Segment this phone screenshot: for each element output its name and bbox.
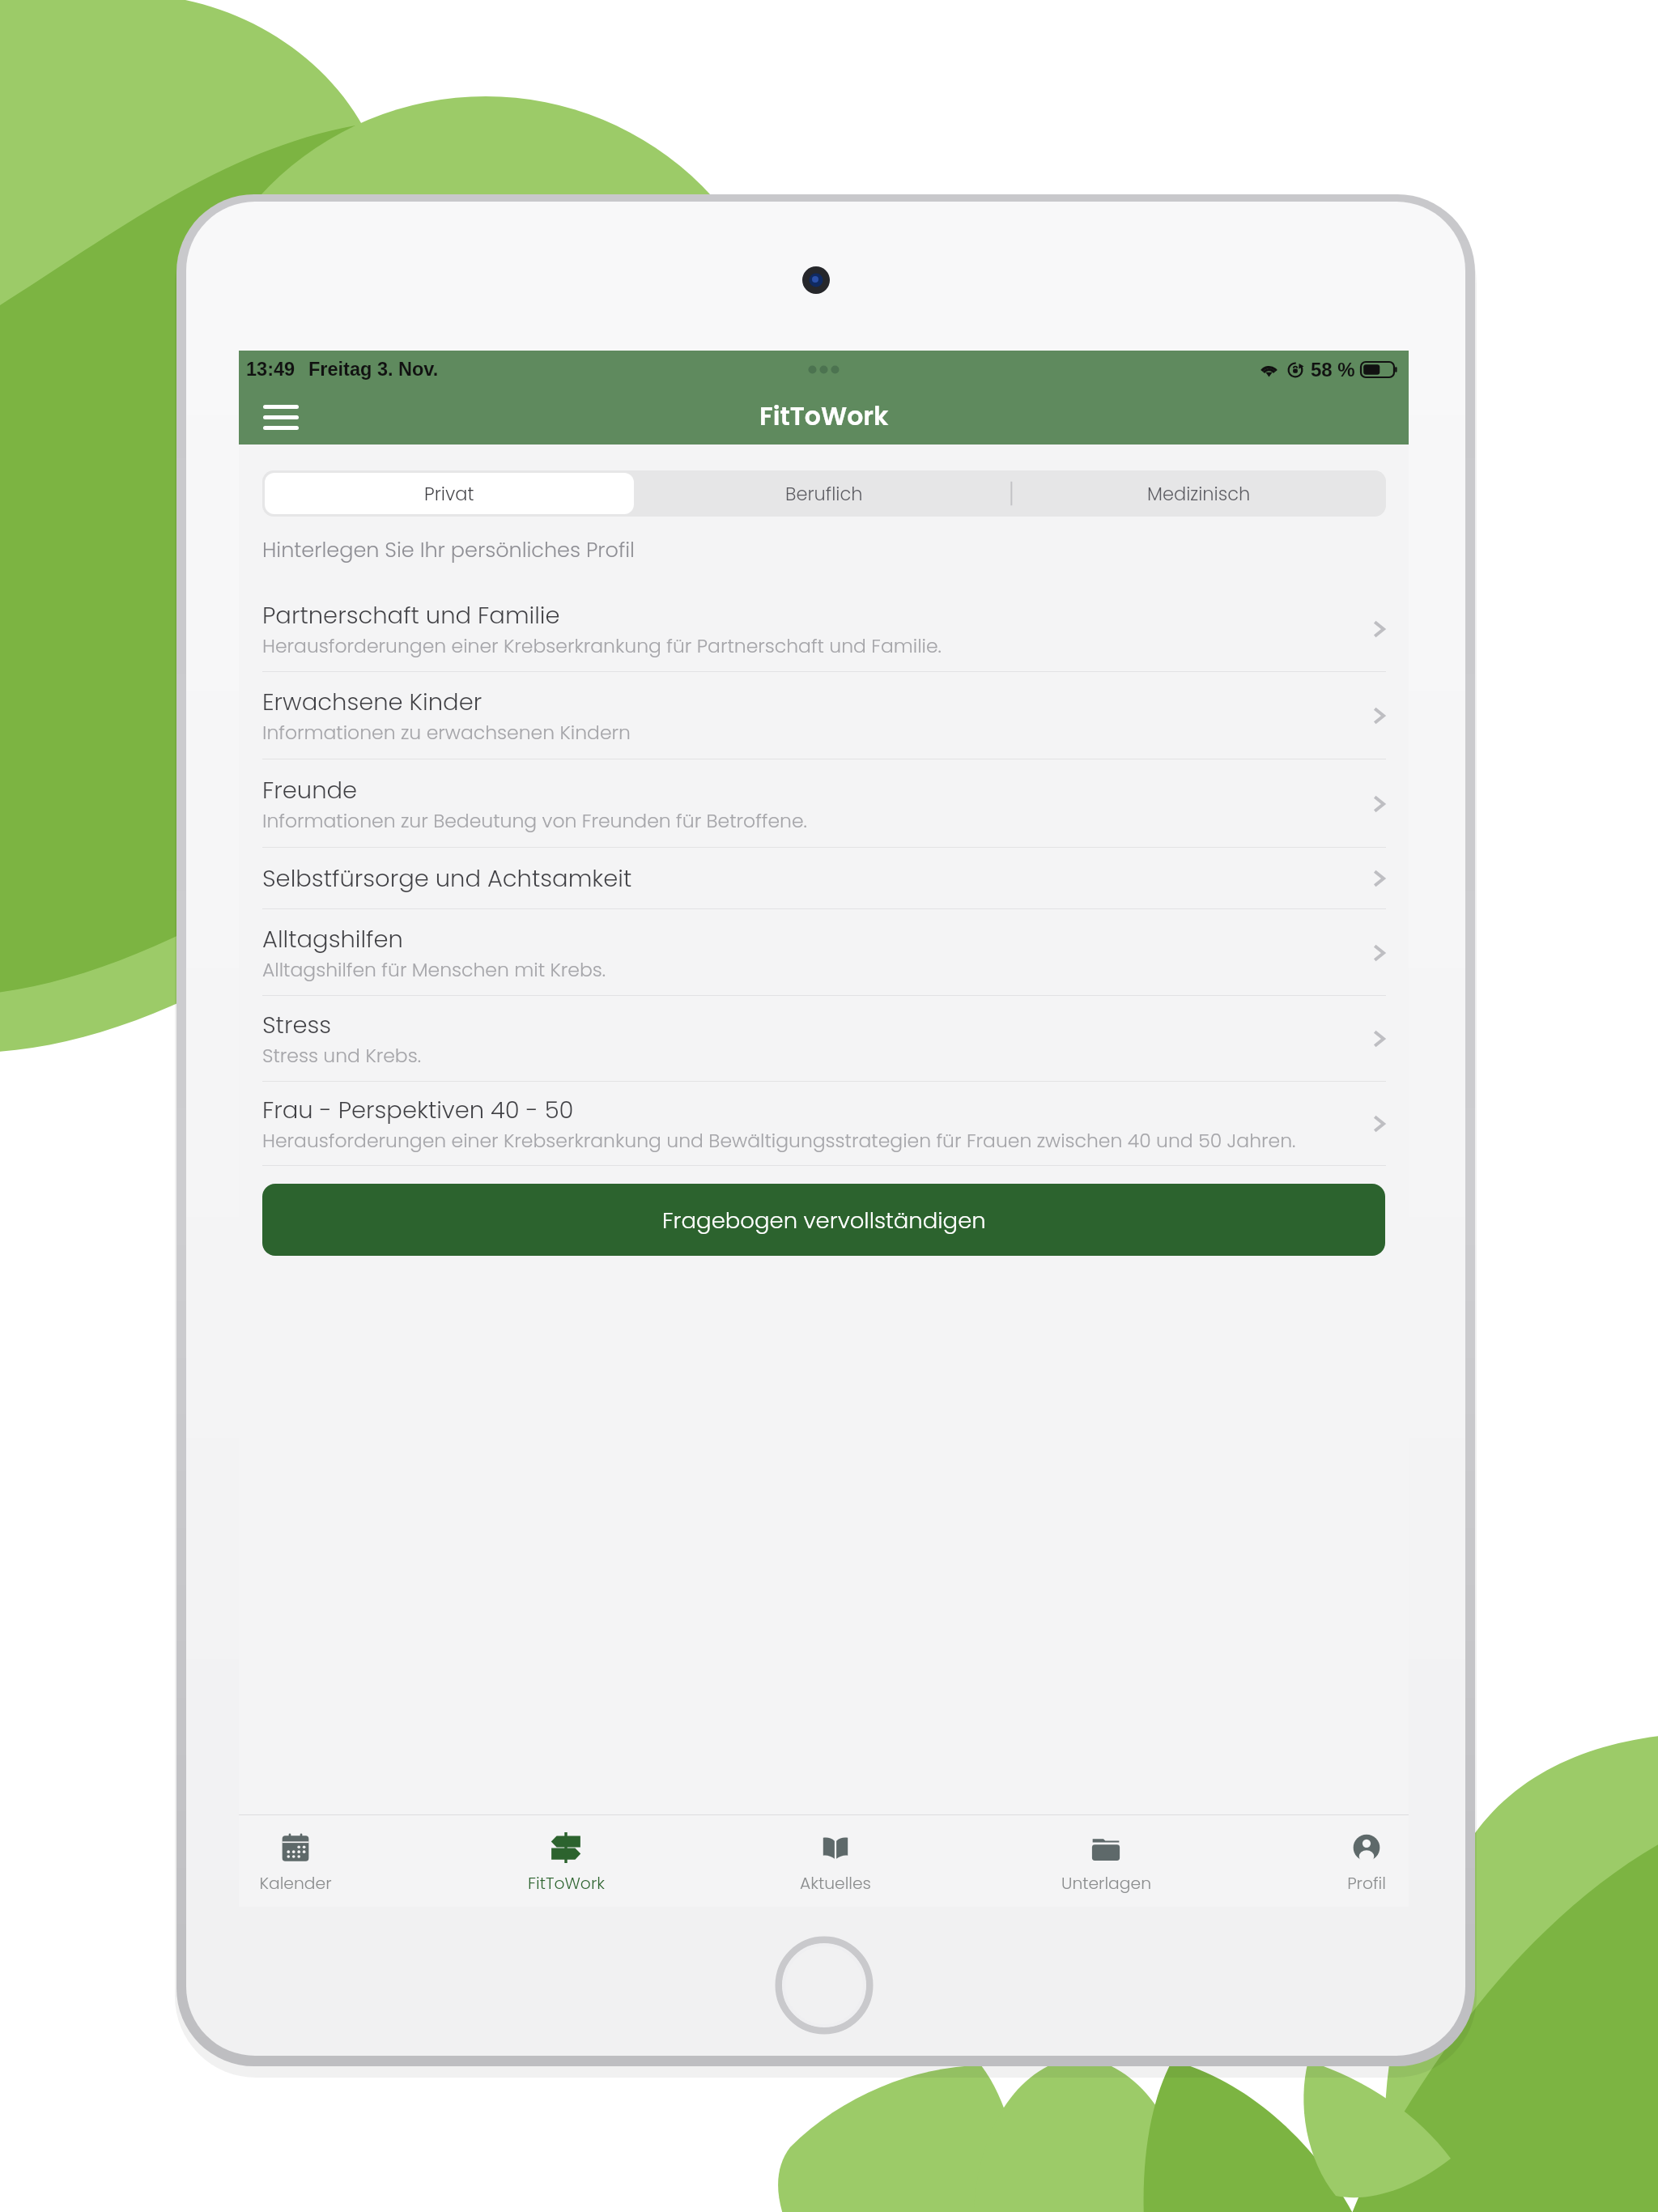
button[interactable]: Profil [1273, 1826, 1460, 1895]
staticText: Stress und Krebs. [262, 1042, 421, 1069]
staticText: Privat [424, 481, 474, 506]
button[interactable]: Alltagshilfen [239, 909, 1409, 996]
button[interactable]: Stress [239, 996, 1409, 1082]
staticText: Kalender [259, 1872, 332, 1895]
staticText: Informationen zu erwachsenen Kindern [262, 719, 631, 746]
staticText: Profil [1347, 1872, 1386, 1895]
staticText: Medizinisch [1147, 481, 1251, 506]
button[interactable]: Medizinisch [1011, 470, 1386, 517]
staticText: Erwachsene Kinder [262, 686, 483, 719]
staticText: Freunde [262, 774, 358, 807]
button[interactable]: Partnerschaft und Familie [239, 585, 1409, 672]
staticText: FitToWork [528, 1872, 605, 1895]
staticText: Hinterlegen Sie Ihr persönliches Profil [262, 535, 635, 564]
staticText: Informationen zur Bedeutung von Freunden… [262, 807, 807, 834]
staticText: Partnerschaft und Familie [262, 599, 560, 632]
staticText: Selbstfürsorge und Achtsamkeit [262, 862, 632, 895]
staticText: Alltagshilfen [262, 923, 403, 956]
staticText: Herausforderungen einer Krebserkrankung … [262, 632, 942, 659]
staticText: Herausforderungen einer Krebserkrankung … [262, 1127, 1296, 1154]
staticText: FitToWork [759, 398, 889, 434]
button[interactable]: Menü öffnen [250, 388, 312, 445]
staticText: Unterlagen [1061, 1872, 1151, 1895]
button[interactable]: FitToWork [473, 1826, 659, 1895]
button[interactable]: Unterlagen [1013, 1826, 1199, 1895]
button[interactable]: Fragebogen vervollständigen [262, 1184, 1385, 1256]
button[interactable]: Aktuelles [742, 1826, 929, 1895]
button[interactable]: Frau - Perspektiven 40 - 50 [239, 1082, 1409, 1166]
staticText: Alltagshilfen für Menschen mit Krebs. [262, 956, 606, 983]
staticText: Freitag 3. Nov. [308, 359, 439, 380]
button[interactable]: Selbstfürsorge und Achtsamkeit [239, 848, 1409, 909]
staticText: 13:49 [246, 359, 295, 380]
staticText: Beruflich [785, 481, 863, 506]
button[interactable]: Kalender [202, 1826, 389, 1895]
button[interactable]: Erwachsene Kinder [239, 672, 1409, 759]
button[interactable]: Beruflich [636, 470, 1011, 517]
staticText: Frau - Perspektiven 40 - 50 [262, 1094, 574, 1127]
button[interactable]: Freunde [239, 759, 1409, 848]
staticText: 58 % [1311, 359, 1355, 381]
staticText: Aktuelles [800, 1872, 871, 1895]
button[interactable]: Privat [265, 473, 634, 514]
staticText: Fragebogen vervollständigen [662, 1205, 986, 1236]
staticText: Stress [262, 1009, 332, 1042]
